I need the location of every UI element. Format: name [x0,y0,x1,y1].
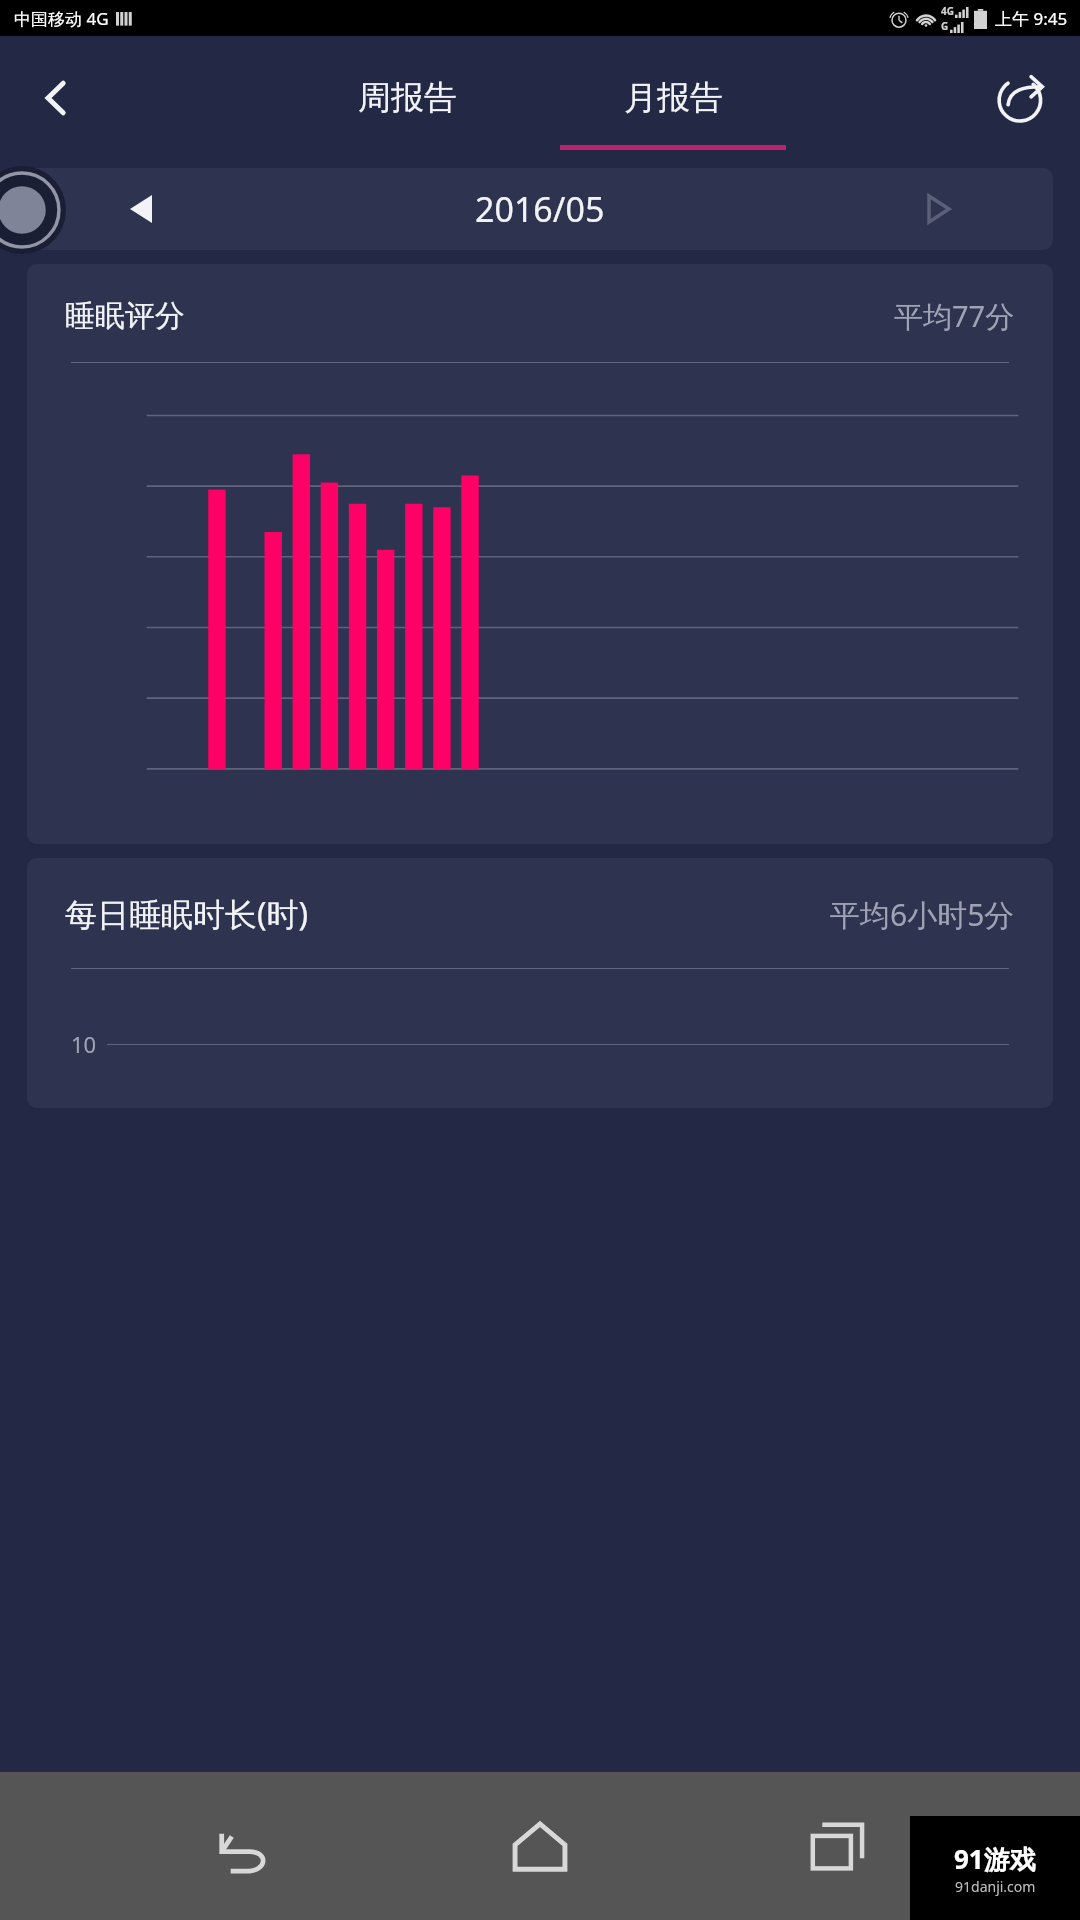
staticText: 睡眠评分 [65,297,185,335]
button[interactable]: Back [24,66,88,130]
button[interactable]: Recent apps [783,1791,893,1901]
staticText: 91游戏 [954,1841,1036,1877]
button[interactable]: 睡眠评分 [27,264,1053,844]
staticText: 91danji.com [955,1877,1036,1896]
staticText: 上午 9:45 [995,7,1068,30]
staticText: 月报告 [624,77,723,119]
staticText: G [941,19,949,33]
staticText: 每日睡眠时长(时) [65,892,309,936]
button[interactable]: Share [986,63,1056,133]
staticText: 中国移动 4G [14,7,109,30]
button[interactable]: Home [485,1791,595,1901]
staticText: 2016/05 [475,186,605,232]
button[interactable]: Back [188,1791,298,1901]
staticText: 平均77分 [894,296,1015,336]
staticText: 10 [71,1029,97,1059]
staticText: 4G [941,4,954,18]
staticText: 周报告 [358,77,457,119]
button[interactable]: Next month [911,181,967,237]
button[interactable]: 月报告 [540,36,806,160]
button[interactable]: Previous month [113,181,169,237]
button[interactable]: 每日睡眠时长(时) [27,858,1053,1108]
button[interactable]: Previous month [27,168,1053,250]
button[interactable]: 周报告 [274,36,540,160]
button[interactable]: Assistive touch [0,166,66,254]
staticText: 平均6小时5分 [830,894,1015,935]
